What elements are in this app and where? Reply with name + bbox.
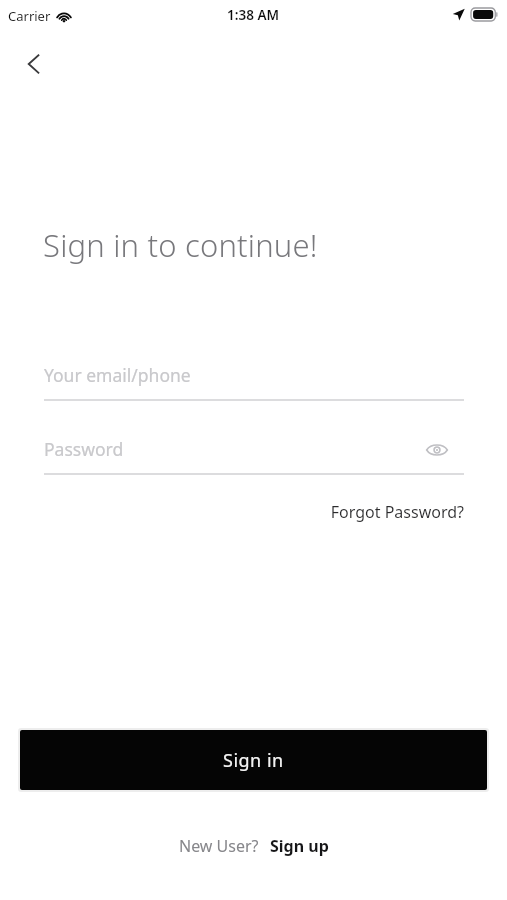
staticText: Sign in to continue! (43, 224, 318, 266)
button[interactable]: Show password (421, 434, 453, 466)
button[interactable]: Sign up (270, 835, 329, 857)
staticText: New User? (179, 835, 259, 857)
staticText: Forgot Password? (330, 501, 464, 523)
staticText: Sign in (223, 748, 284, 773)
staticText: Carrier (8, 7, 51, 25)
button[interactable]: Forgot Password? (300, 497, 464, 527)
button[interactable]: Your email/phone (44, 363, 464, 387)
staticText: Sign up (270, 835, 329, 857)
button[interactable]: Back (12, 42, 56, 86)
button[interactable]: Password (44, 437, 414, 461)
staticText: 1:38 AM (227, 6, 280, 24)
button[interactable]: Sign in (20, 730, 487, 790)
